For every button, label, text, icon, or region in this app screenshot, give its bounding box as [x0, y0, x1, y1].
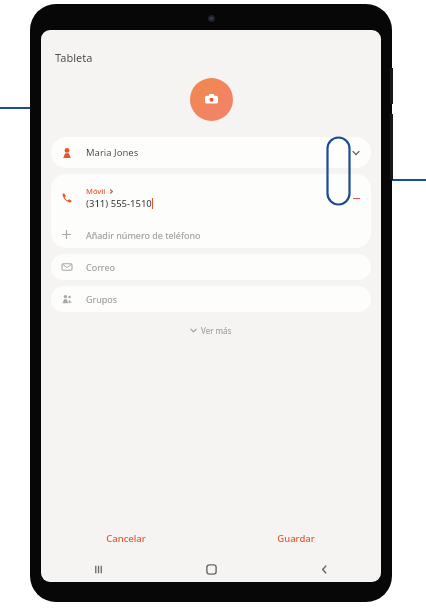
button[interactable]: Ver más — [182, 321, 240, 340]
staticText: (311) 555-1510 — [86, 197, 152, 210]
staticText: Correo — [86, 261, 115, 273]
button[interactable]: Inicio — [155, 556, 268, 582]
staticText: Añadir número de teléfono — [86, 229, 201, 241]
button[interactable]: Añadir número de teléfono — [51, 221, 371, 248]
staticText: Móvil — [86, 186, 106, 196]
button[interactable]: Correo — [51, 254, 371, 280]
button[interactable]: Móvil — [51, 174, 371, 221]
button[interactable]: Maria Jones — [51, 137, 371, 168]
staticText: Guardar — [277, 532, 315, 545]
button[interactable]: Expandir — [349, 146, 363, 160]
staticText: Grupos — [86, 293, 118, 305]
button[interactable]: Guardar — [211, 525, 381, 552]
button[interactable]: Grupos — [51, 286, 371, 312]
button[interactable]: Recientes — [41, 556, 155, 582]
staticText: Tableta — [55, 50, 93, 65]
button[interactable]: Añadir foto de contacto — [190, 78, 233, 121]
button[interactable]: Cancelar — [41, 525, 211, 552]
staticText: Cancelar — [106, 532, 146, 545]
button[interactable]: Quitar número — [349, 191, 363, 205]
staticText: Ver más — [201, 325, 232, 336]
staticText: Maria Jones — [86, 146, 139, 159]
button[interactable]: Atrás — [268, 556, 381, 582]
